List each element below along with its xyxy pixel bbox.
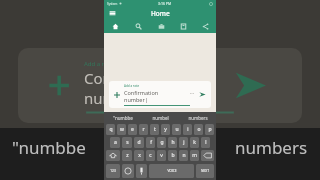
staticText: VOICE [167,169,177,173]
staticText: c [149,152,152,159]
button[interactable]: Add attachment [109,81,211,108]
button[interactable]: n [179,150,188,161]
button[interactable]: k [190,137,199,148]
button[interactable]: d [134,137,144,148]
button[interactable]: f [146,137,155,148]
button[interactable]: i [183,124,192,135]
staticText: o [197,126,201,133]
button[interactable]: m [190,150,199,161]
staticText: Add a note [84,60,115,68]
staticText: k [193,139,196,146]
staticText: Add a note [124,84,140,88]
staticText: 3:16 PM [158,1,172,6]
button[interactable]: Briefcase [150,19,172,33]
staticText: f [150,139,152,146]
button[interactable]: 123 [106,164,120,178]
staticText: u [175,126,179,133]
staticText: q [109,126,113,133]
button[interactable]: e [128,124,137,135]
button[interactable]: Voice input [136,164,147,178]
staticText: number [84,88,141,108]
button[interactable]: Backspace [201,150,214,161]
staticText: System [107,2,118,6]
staticText: x [138,152,141,159]
staticText: numbers [188,115,208,121]
staticText: numbers [235,136,308,159]
button[interactable]: x [134,150,144,161]
button[interactable]: u [172,124,181,135]
staticText: n [182,152,186,159]
button[interactable]: VOICE [149,164,194,178]
button[interactable]: r [139,124,148,135]
button[interactable]: s [122,137,132,148]
staticText: Confirmation [84,68,178,88]
staticText: s [126,139,129,146]
staticText: w [120,126,124,133]
button[interactable]: h [168,137,177,148]
button[interactable]: Home [104,19,127,33]
button[interactable]: Bookmarks [172,19,194,33]
staticText: b [171,152,175,159]
button[interactable]: y [161,124,170,135]
button[interactable]: l [201,137,210,148]
button[interactable]: b [168,150,177,161]
button[interactable]: p [205,124,214,135]
staticText: "numbbe [113,115,133,121]
staticText: t [154,126,156,133]
staticText: r [142,126,145,133]
staticText: Confirmation [124,89,159,96]
button[interactable]: numbel [142,112,179,123]
staticText: Home [151,9,170,18]
staticText: l [205,139,207,146]
button[interactable]: q [106,124,115,135]
button[interactable]: z [122,150,132,161]
staticText: i [187,126,189,133]
button[interactable]: j [179,137,188,148]
button[interactable]: Search [127,19,150,33]
button[interactable]: c [146,150,155,161]
staticText: v [160,152,163,159]
button[interactable]: numbers [179,112,216,123]
button[interactable]: Emoji [122,164,134,178]
staticText: j [183,139,185,146]
staticText: number| [124,96,148,103]
button[interactable]: Send [197,89,208,100]
staticText: z [126,152,129,159]
button[interactable]: Shift [106,150,120,161]
button[interactable]: v [157,150,166,161]
staticText: y [164,126,167,133]
button[interactable]: a [110,137,120,148]
button[interactable]: g [157,137,166,148]
staticText: p [208,126,212,133]
staticText: m [192,152,197,159]
button[interactable]: "numbbe [104,112,142,123]
button[interactable]: Add attachment [112,90,122,100]
button[interactable]: Open navigation menu [108,9,116,17]
staticText: a [114,139,117,146]
button[interactable]: Share [194,19,216,33]
staticText: g [160,139,164,146]
staticText: e [131,126,134,133]
staticText: numbel [152,115,169,121]
staticText: "numbbe [12,136,86,159]
staticText: NEXT [201,169,209,173]
staticText: h [171,139,175,146]
staticText: … [190,89,194,96]
button[interactable]: NEXT [196,164,214,178]
staticText: 123 [110,169,116,173]
staticText: d [137,139,141,146]
button[interactable]: t [150,124,159,135]
button[interactable]: o [194,124,203,135]
button[interactable]: w [117,124,126,135]
